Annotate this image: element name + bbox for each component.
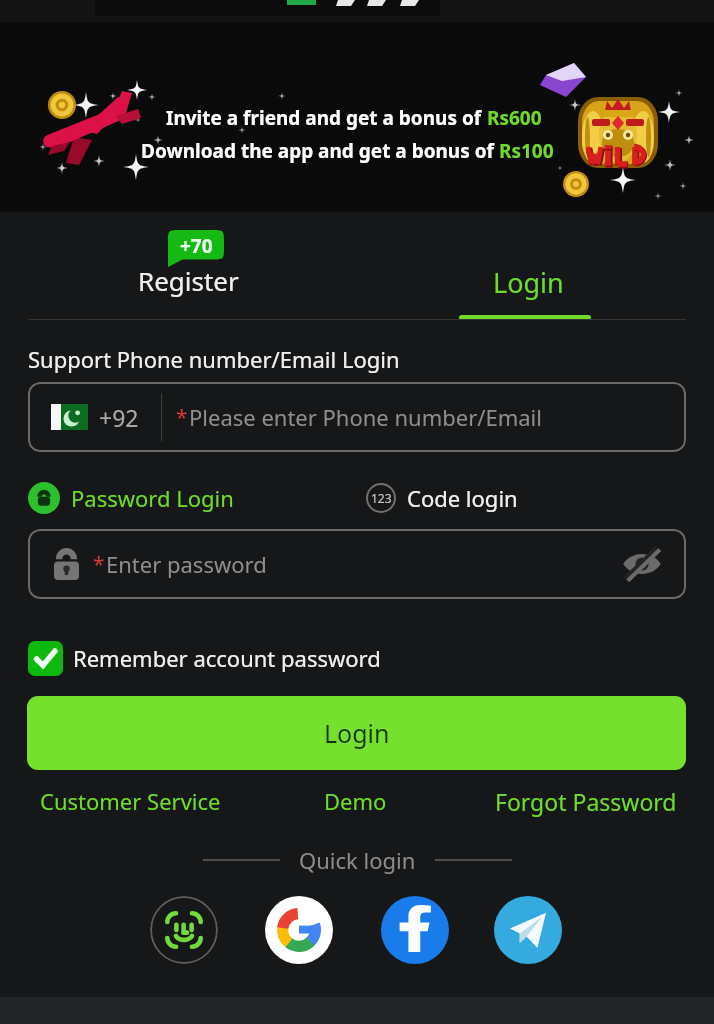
staticText: Support Phone number/Email Login [28, 344, 400, 374]
button[interactable]: Face ID login [150, 896, 218, 964]
staticText: Rs600 [487, 105, 542, 131]
button[interactable]: Show password [614, 536, 670, 592]
staticText: Download the app and get a bonus of [141, 138, 499, 164]
button[interactable]: Register [0, 212, 357, 322]
staticText: Code login [407, 483, 518, 513]
button[interactable]: Sign in with Facebook [381, 896, 449, 964]
staticText: Login [493, 264, 564, 301]
staticText: Please enter Phone number/Email [189, 402, 542, 432]
button[interactable]: Customer Service [40, 786, 221, 816]
staticText: * [176, 403, 188, 432]
staticText: +92 [99, 402, 139, 433]
button[interactable]: Login [357, 212, 714, 322]
button[interactable]: Login [27, 696, 686, 770]
button[interactable]: Remember account password [28, 640, 381, 676]
staticText: Quick login [299, 845, 416, 875]
staticText: Enter password [106, 549, 267, 579]
staticText: Password Login [71, 483, 234, 513]
button[interactable]: 123 [366, 475, 518, 521]
staticText: 123 [371, 490, 392, 506]
staticText: +70 [180, 233, 213, 259]
button[interactable]: Sign in with Telegram [494, 896, 562, 964]
staticText: Register [138, 263, 239, 298]
button[interactable]: Password Login [28, 475, 234, 521]
staticText: Remember account password [73, 643, 381, 673]
staticText: * [93, 550, 105, 579]
button[interactable]: +92 [28, 382, 686, 452]
staticText: Rs100 [499, 138, 554, 164]
button[interactable]: * [28, 529, 686, 599]
button[interactable]: Forgot Password [495, 786, 677, 817]
button[interactable]: Demo [324, 786, 387, 816]
staticText: Invite a friend and get a bonus of [166, 105, 487, 131]
button[interactable]: Sign in with Google [265, 896, 333, 964]
staticText: Login [324, 716, 390, 750]
